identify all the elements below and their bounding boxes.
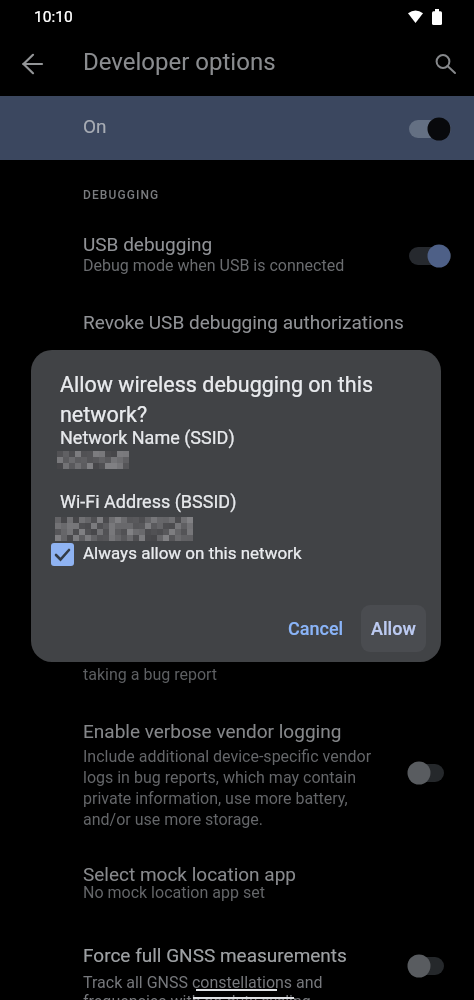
staticText: Network Name (SSID) — [60, 427, 235, 448]
button[interactable] — [408, 243, 451, 269]
staticText: No mock location app set — [83, 883, 265, 902]
staticText: Track all GNSS constellations and — [83, 973, 323, 992]
staticText: Always allow on this network — [83, 543, 302, 563]
button[interactable] — [20, 50, 48, 78]
button[interactable] — [408, 116, 451, 142]
staticText: Include additional device-specific vendo… — [83, 747, 372, 829]
staticText: Allow — [371, 618, 416, 639]
staticText: DEBUGGING — [83, 188, 160, 202]
button[interactable] — [51, 543, 74, 566]
button[interactable] — [408, 953, 451, 979]
staticText: On — [83, 115, 107, 137]
staticText: Allow wireless debugging on this network… — [60, 372, 374, 427]
staticText: Enable verbose vendor logging — [83, 720, 342, 742]
staticText: Cancel — [288, 618, 344, 639]
button[interactable]: On — [0, 96, 474, 160]
staticText: Force full GNSS measurements — [83, 944, 347, 966]
staticText: frequencies with no duty cycling — [83, 992, 311, 1000]
staticText: Wi-Fi Address (BSSID) — [60, 491, 237, 512]
button[interactable] — [0, 300, 474, 352]
button[interactable]: Cancel — [284, 608, 348, 648]
button[interactable] — [408, 760, 451, 786]
staticText: Select mock location app — [83, 863, 296, 885]
button[interactable]: Allow — [361, 605, 426, 652]
staticText: Developer options — [83, 48, 276, 76]
button[interactable] — [0, 222, 474, 288]
staticText: Revoke USB debugging authorizations — [83, 311, 404, 333]
staticText: taking a bug report — [83, 665, 218, 684]
staticText: USB debugging — [83, 233, 213, 255]
button[interactable] — [430, 49, 456, 75]
staticText: Debug mode when USB is connected — [83, 256, 345, 275]
staticText: 10:10 — [34, 8, 73, 26]
